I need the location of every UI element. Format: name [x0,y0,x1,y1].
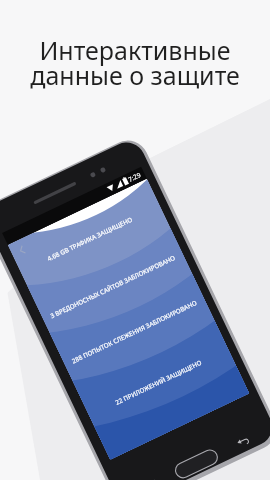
staticText: Интерактивные данные о защите [0,33,270,93]
